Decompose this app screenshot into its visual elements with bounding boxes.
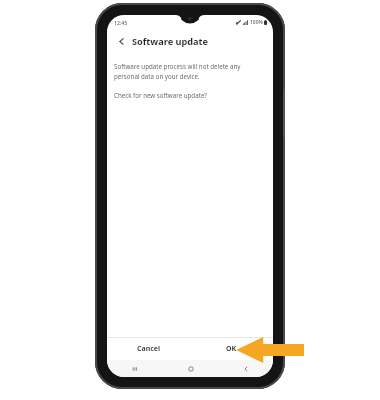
staticText: OK — [226, 344, 237, 354]
staticText: 100% — [250, 19, 263, 26]
staticText: Software update process will not delete … — [114, 62, 241, 81]
staticText: 12:45 — [114, 19, 128, 26]
button[interactable]: Back — [218, 360, 273, 377]
button[interactable]: Cancel — [107, 338, 190, 360]
button[interactable]: Back — [114, 34, 128, 48]
button[interactable]: Recents — [107, 360, 163, 377]
staticText: Check for new software update? — [114, 91, 208, 99]
button[interactable]: Home — [163, 360, 218, 377]
button[interactable]: OK — [190, 338, 273, 360]
staticText: Software update — [132, 35, 209, 48]
staticText: Cancel — [137, 344, 161, 354]
